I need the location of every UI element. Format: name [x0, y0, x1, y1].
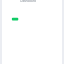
staticText: Dashboard — [0, 0, 58, 3]
button[interactable] — [0, 0, 64, 64]
